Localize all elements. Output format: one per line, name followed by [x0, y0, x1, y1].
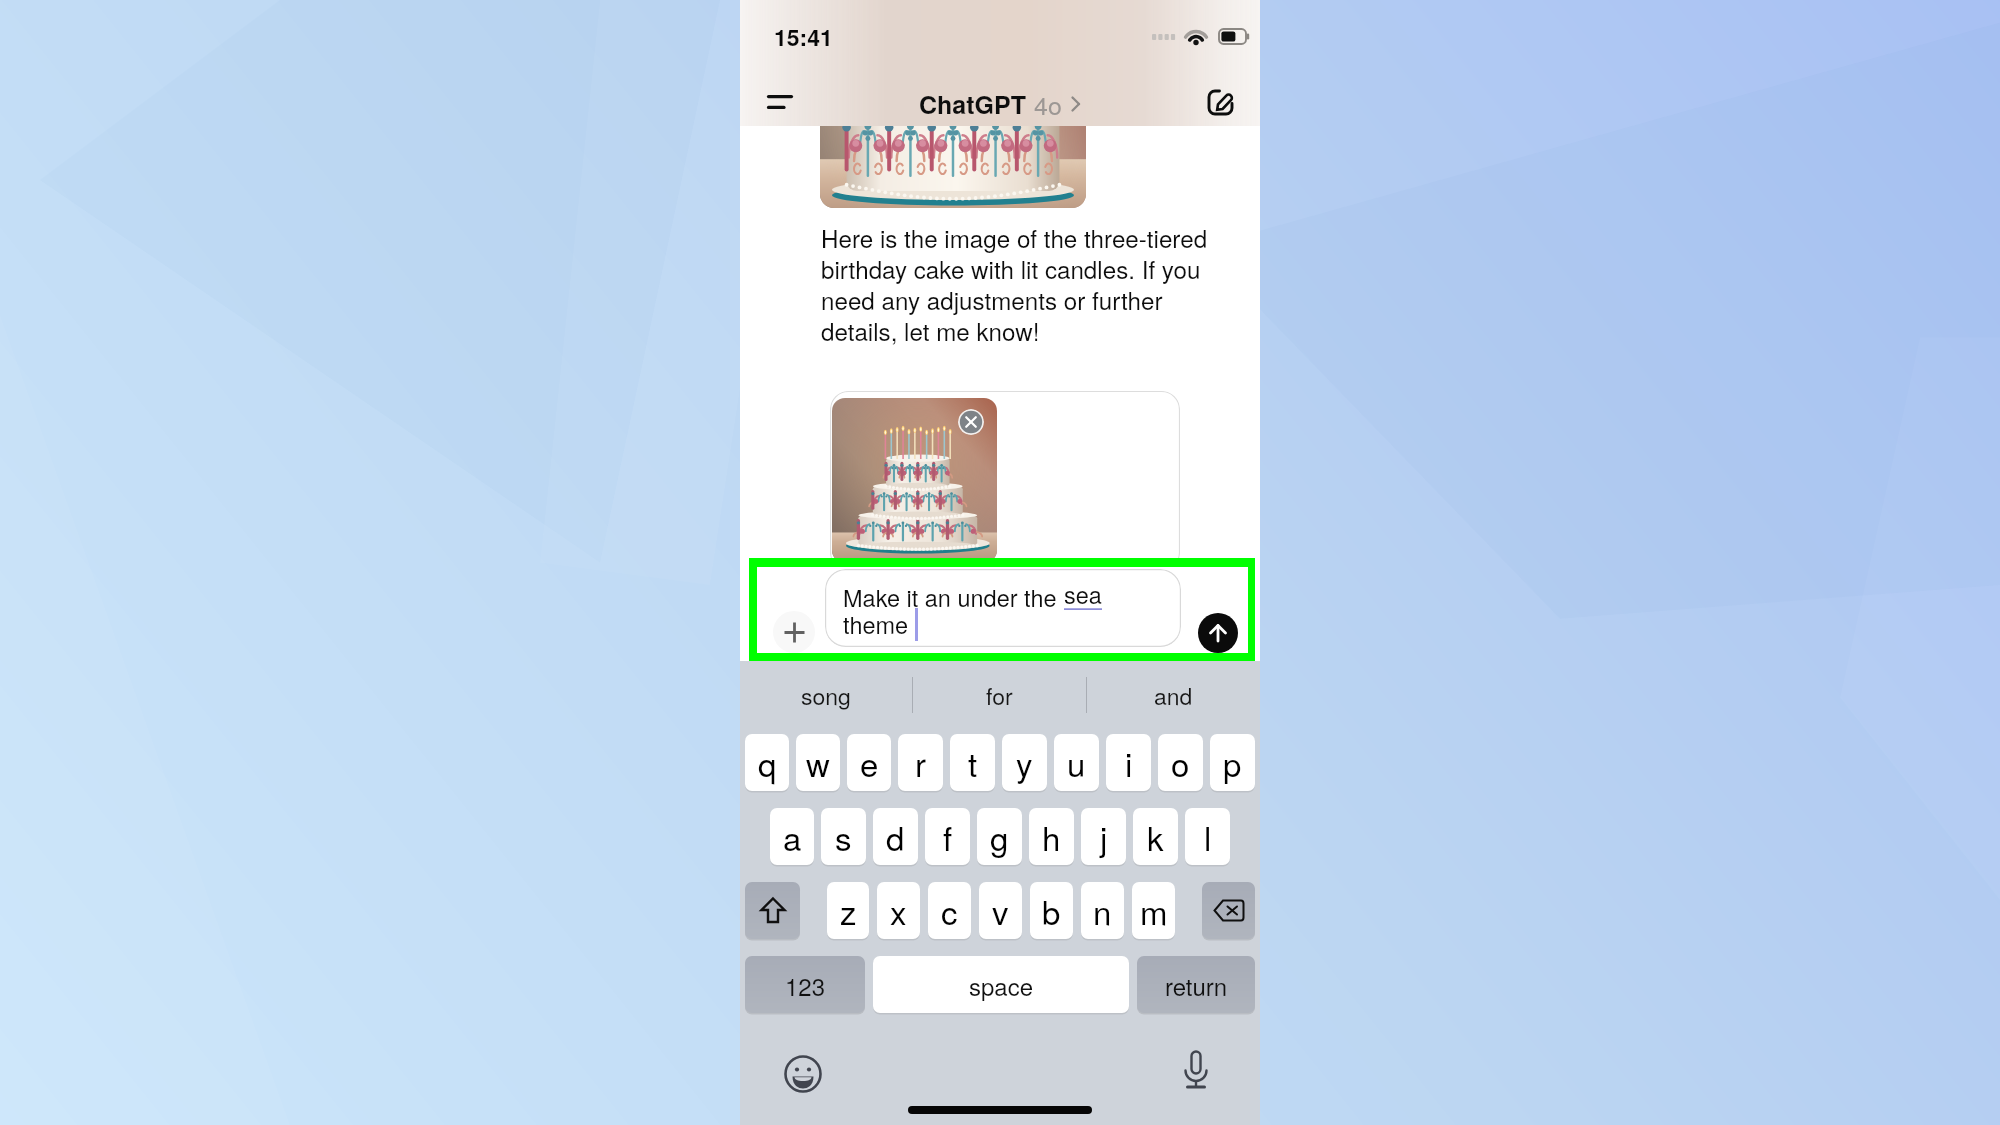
staticText: and — [1154, 679, 1193, 712]
button[interactable]: v — [979, 882, 1022, 939]
staticText: 15:41 — [774, 20, 833, 53]
button[interactable]: n — [1081, 882, 1124, 939]
staticText: return — [1165, 968, 1228, 1002]
staticText: a — [783, 813, 802, 860]
staticText: g — [990, 813, 1009, 860]
button[interactable]: p — [1210, 734, 1255, 791]
button[interactable]: Return — [1137, 956, 1255, 1013]
button[interactable]: song — [740, 661, 912, 729]
button[interactable]: r — [898, 734, 943, 791]
button[interactable]: s — [821, 808, 866, 865]
button[interactable]: Menu — [754, 76, 806, 128]
staticText: r — [915, 739, 926, 786]
staticText: q — [758, 739, 777, 786]
button[interactable]: k — [1133, 808, 1178, 865]
staticText: w — [806, 739, 830, 786]
button[interactable]: Emoji — [781, 1052, 825, 1096]
button[interactable]: q — [745, 734, 789, 791]
staticText: t — [968, 739, 978, 786]
staticText: j — [1100, 813, 1108, 860]
button[interactable]: Send — [1198, 613, 1238, 653]
button[interactable]: h — [1029, 808, 1074, 865]
staticText: i — [1125, 739, 1133, 786]
button[interactable]: a — [770, 808, 814, 865]
staticText: 123 — [785, 968, 826, 1002]
staticText: b — [1042, 887, 1061, 934]
staticText: m — [1140, 887, 1168, 934]
button[interactable]: i — [1106, 734, 1151, 791]
staticText: y — [1016, 739, 1033, 786]
button[interactable]: Remove attachment — [958, 409, 984, 435]
button[interactable]: m — [1132, 882, 1175, 939]
button[interactable]: x — [877, 882, 920, 939]
button[interactable]: space — [873, 956, 1129, 1013]
staticText: f — [943, 813, 953, 860]
staticText: c — [941, 887, 958, 934]
staticText: ChatGPT — [919, 86, 1026, 122]
staticText: theme — [843, 607, 915, 641]
staticText: p — [1223, 739, 1242, 786]
staticText: sea — [1064, 577, 1102, 611]
staticText: h — [1042, 813, 1061, 860]
button[interactable]: j — [1081, 808, 1126, 865]
button[interactable]: c — [928, 882, 971, 939]
button[interactable]: l — [1185, 808, 1230, 865]
staticText: Make it an under the — [843, 580, 1064, 614]
button[interactable]: d — [873, 808, 918, 865]
staticText: l — [1204, 813, 1212, 860]
button[interactable]: f — [925, 808, 970, 865]
staticText: for — [986, 679, 1013, 712]
button[interactable]: g — [977, 808, 1022, 865]
staticText: o — [1171, 739, 1190, 786]
button[interactable]: Numbers — [745, 956, 865, 1013]
button[interactable]: Shift — [745, 882, 800, 939]
staticText: s — [835, 813, 852, 860]
staticText: Here is the image of the three-tiered bi… — [821, 220, 1213, 348]
button[interactable]: Dictate — [1174, 1048, 1218, 1092]
button[interactable]: z — [827, 882, 869, 939]
button[interactable]: and — [1087, 661, 1260, 729]
button[interactable]: o — [1158, 734, 1203, 791]
button[interactable]: New chat — [1194, 76, 1246, 128]
staticText: z — [840, 887, 857, 934]
staticText: d — [886, 813, 905, 860]
staticText: e — [860, 739, 879, 786]
staticText: u — [1067, 739, 1086, 786]
button[interactable]: y — [1002, 734, 1047, 791]
button[interactable]: u — [1054, 734, 1099, 791]
button[interactable]: b — [1030, 882, 1073, 939]
staticText: x — [890, 887, 907, 934]
button[interactable]: w — [796, 734, 840, 791]
button[interactable]: Add attachment — [773, 611, 815, 653]
staticText: k — [1147, 813, 1164, 860]
button[interactable]: t — [950, 734, 995, 791]
button[interactable]: for — [913, 661, 1086, 729]
staticText: space — [969, 968, 1034, 1002]
staticText: v — [992, 887, 1009, 934]
staticText: n — [1093, 887, 1112, 934]
button[interactable]: e — [847, 734, 891, 791]
staticText: song — [801, 679, 851, 712]
staticText: 4o — [1034, 86, 1062, 122]
button[interactable]: ChatGPT — [919, 86, 1081, 122]
button[interactable]: Backspace — [1202, 882, 1255, 939]
button[interactable]: Make it an under the — [825, 569, 1181, 647]
